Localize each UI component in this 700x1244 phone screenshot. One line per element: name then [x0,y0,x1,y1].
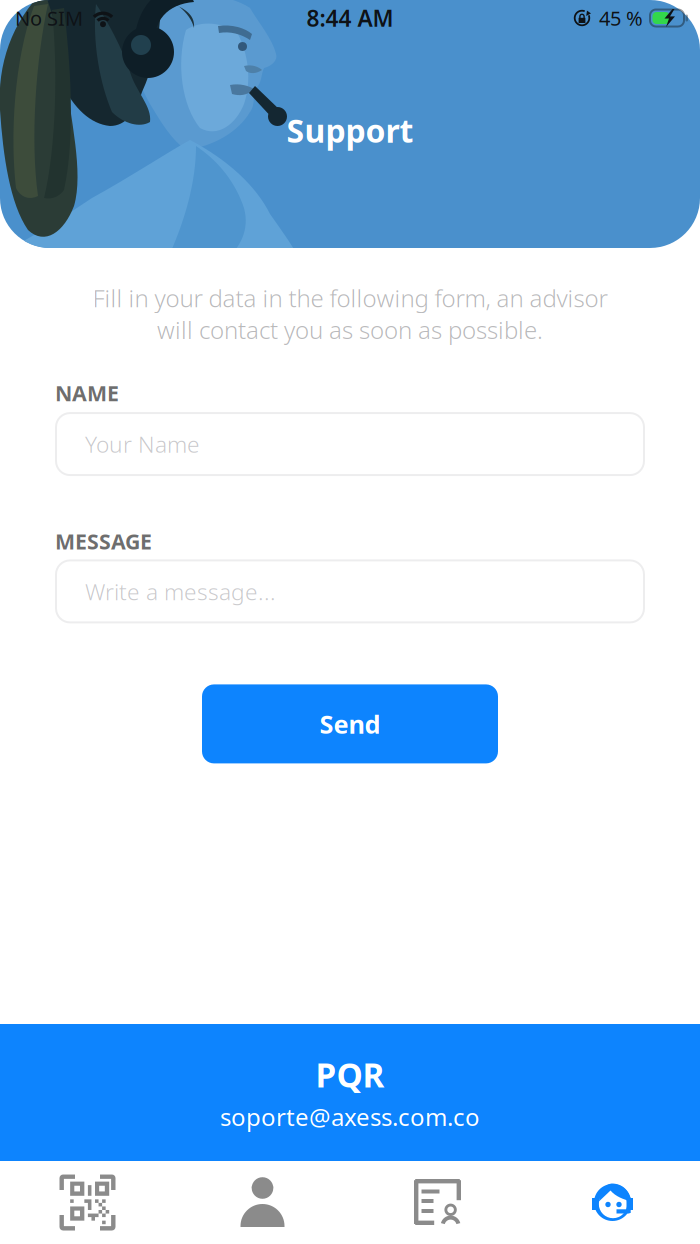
button[interactable]: Send [202,684,498,763]
staticText: MESSAGE [55,527,152,555]
staticText: Fill in your data in the following form,… [92,282,607,314]
button[interactable]: Scan QR code [0,1161,175,1244]
button[interactable]: Documents [350,1161,525,1244]
staticText: 45 % [599,5,643,31]
staticText: soporte@axess.com.co [220,1101,480,1133]
staticText: will contact you as soon as possible. [157,314,543,346]
staticText: NAME [55,379,119,407]
staticText: No SIM [15,5,83,31]
button[interactable]: Support [525,1161,700,1244]
staticText: Your Name [85,429,200,459]
staticText: Send [319,707,380,741]
staticText: Write a message... [85,576,276,606]
button[interactable]: Profile [175,1161,350,1244]
button[interactable]: Your Name [56,413,644,475]
staticText: 8:44 AM [306,3,393,33]
button[interactable]: Write a message... [56,560,644,622]
staticText: Support [286,109,413,151]
staticText: PQR [315,1052,384,1097]
